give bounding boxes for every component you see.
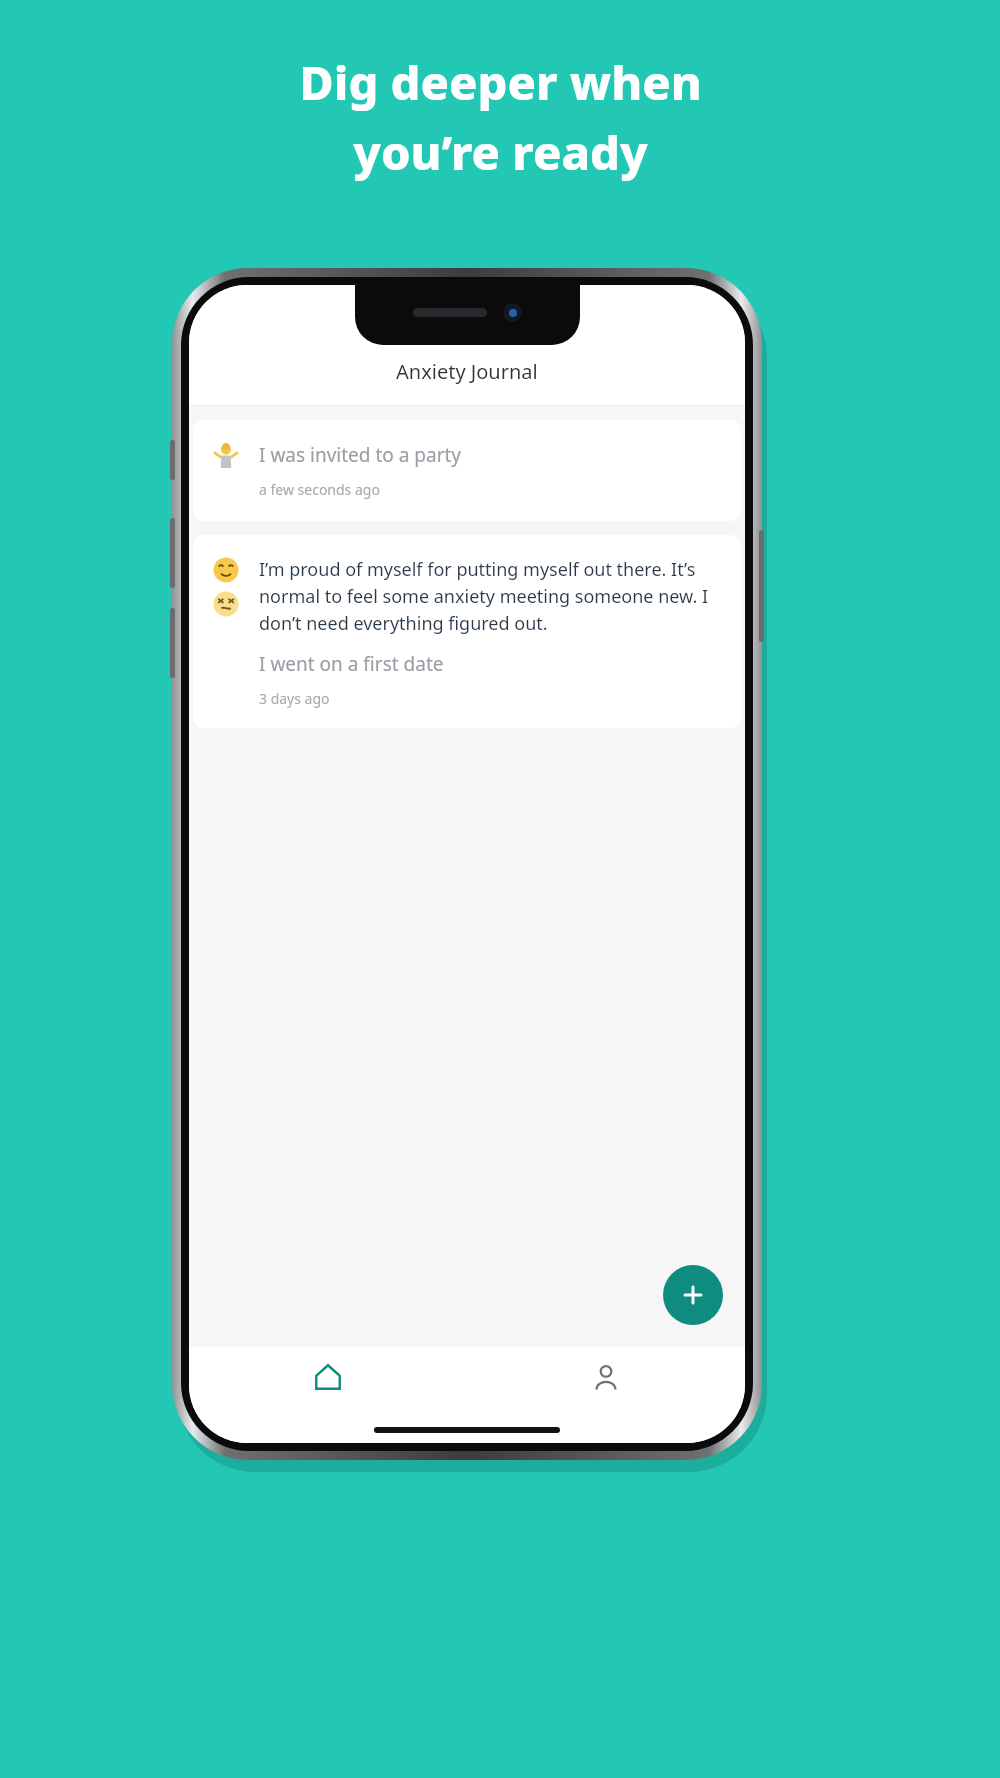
- button[interactable]: I’m proud of myself for putting myself o…: [193, 535, 741, 728]
- staticText: Anxiety Journal: [396, 358, 538, 385]
- button[interactable]: Profile: [467, 1347, 745, 1443]
- staticText: I went on a first date: [259, 651, 444, 677]
- staticText: I was invited to a party: [259, 442, 462, 468]
- staticText: I’m proud of myself for putting myself o…: [259, 557, 727, 635]
- button[interactable]: Home: [189, 1347, 467, 1443]
- button[interactable]: Add journal entry: [663, 1265, 723, 1325]
- staticText: Dig deeper when: [299, 50, 702, 114]
- button[interactable]: I was invited to a party: [193, 420, 741, 521]
- staticText: 3 days ago: [259, 689, 330, 708]
- staticText: a few seconds ago: [259, 480, 380, 499]
- staticText: you’re ready: [353, 120, 648, 184]
